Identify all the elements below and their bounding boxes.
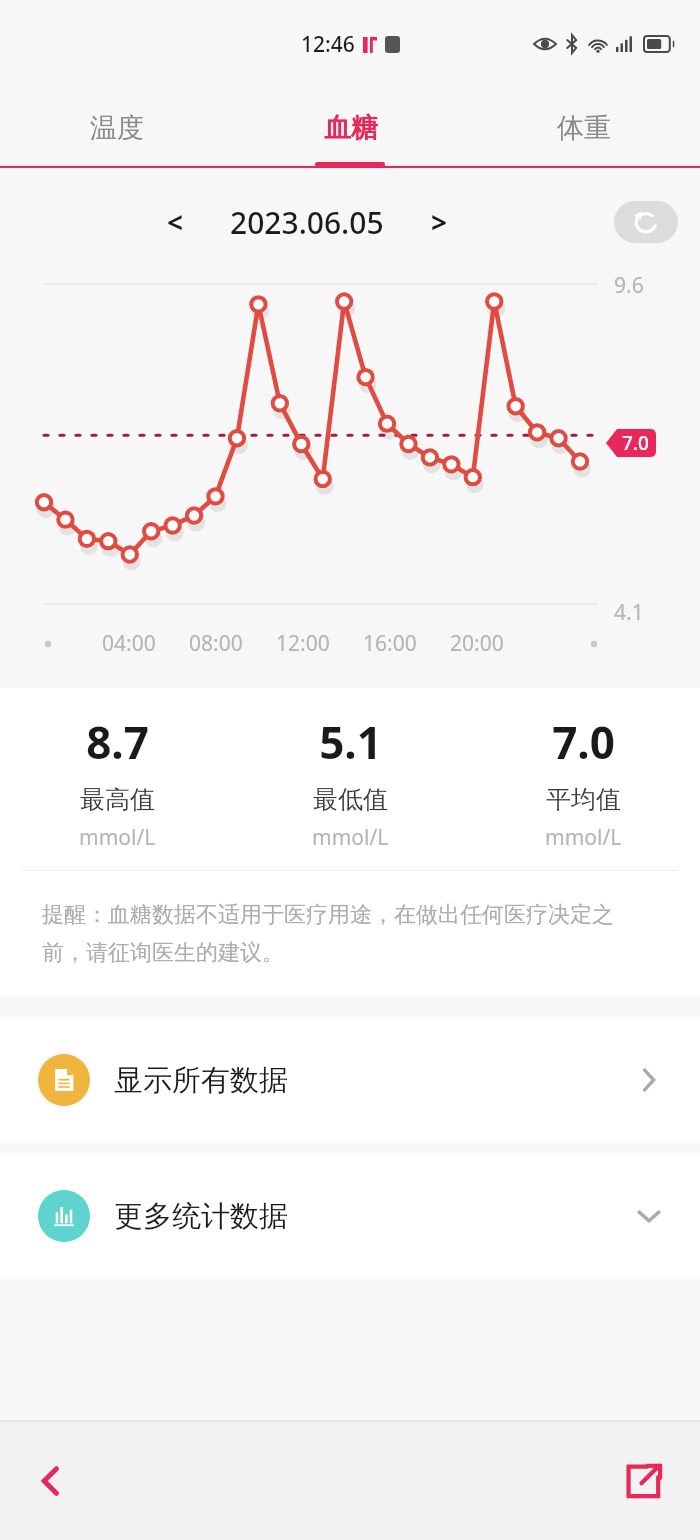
staticText: 显示所有数据 — [114, 1062, 288, 1099]
button[interactable]: Share — [612, 1450, 674, 1512]
staticText: 12:00 — [276, 629, 330, 658]
button[interactable]: 体重 — [467, 88, 700, 168]
staticText: 提醒：血糖数据不适用于医疗用途，在做出任何医疗决定之 前，请征询医生的建议。 — [42, 901, 614, 967]
staticText: 5.1 — [319, 712, 382, 772]
staticText: 04:00 — [102, 629, 156, 658]
button[interactable]: 更多统计数据 — [0, 1153, 700, 1279]
staticText: 7.0 — [552, 712, 615, 772]
staticText: < — [167, 203, 184, 241]
staticText: mmol/L — [545, 823, 622, 852]
staticText: mmol/L — [79, 823, 156, 852]
button[interactable]: 温度 — [0, 88, 234, 168]
button[interactable]: 显示所有数据 — [0, 1017, 700, 1143]
staticText: 8.7 — [86, 712, 149, 772]
staticText: 2023.06.05 — [230, 202, 384, 243]
button[interactable]: 血糖 — [234, 88, 467, 168]
staticText: 08:00 — [189, 629, 243, 658]
button[interactable]: Back — [20, 1450, 82, 1512]
staticText: mmol/L — [312, 823, 389, 852]
staticText: 平均值 — [546, 784, 621, 815]
staticText: 9.6 — [614, 271, 644, 300]
staticText: 7.0 — [622, 430, 649, 456]
staticText: 最高值 — [80, 784, 155, 815]
staticText: 更多统计数据 — [114, 1198, 288, 1235]
staticText: 最低值 — [313, 784, 388, 815]
staticText: 20:00 — [450, 629, 504, 658]
staticText: 12:46 — [301, 30, 355, 59]
staticText: 4.1 — [614, 598, 644, 627]
staticText: 血糖 — [324, 111, 378, 145]
staticText: 温度 — [90, 111, 144, 145]
button[interactable]: Previous day — [150, 197, 200, 247]
staticText: > — [431, 203, 448, 241]
staticText: 16:00 — [363, 629, 417, 658]
button[interactable]: Reset — [614, 201, 678, 243]
staticText: 体重 — [557, 111, 611, 145]
button[interactable]: Next day — [414, 197, 464, 247]
